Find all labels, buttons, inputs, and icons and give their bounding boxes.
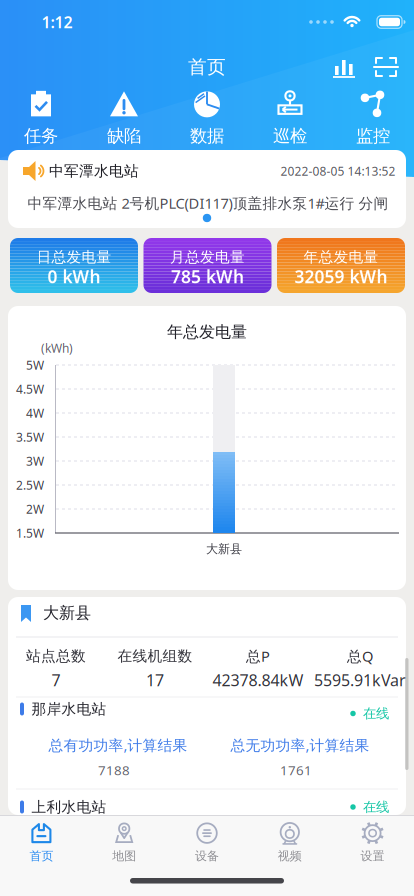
staticText: 在线 <box>363 799 389 815</box>
staticText: 32059 kWh <box>294 265 387 288</box>
staticText: 年总发电量 <box>303 248 378 266</box>
button[interactable]: 扫一扫 <box>373 54 399 80</box>
staticText: 3.5W <box>16 429 44 445</box>
staticText: 大新县 <box>206 542 242 556</box>
staticText: 月总发电量 <box>170 248 245 266</box>
staticText: 首页 <box>188 55 226 78</box>
staticText: 任务 <box>24 125 58 147</box>
staticText: 地图 <box>112 849 136 863</box>
staticText: 总P <box>246 646 270 666</box>
staticText: 2W <box>26 501 44 517</box>
staticText: 年总发电量 <box>167 322 247 342</box>
staticText: 1761 <box>280 761 312 779</box>
staticText: 在线机组数 <box>117 647 192 665</box>
staticText: 42378.84kW <box>212 669 303 691</box>
staticText: 1.5W <box>16 525 44 541</box>
button[interactable]: 那岸水电站 <box>8 696 406 722</box>
staticText: 中军潭水电站 <box>49 162 139 180</box>
staticText: 设备 <box>195 849 219 863</box>
staticText: 缺陷 <box>107 125 141 147</box>
button[interactable]: 巡检 <box>249 90 331 146</box>
staticText: 总Q <box>347 646 373 666</box>
button[interactable]: 设备 <box>166 818 248 866</box>
button[interactable]: 视频 <box>248 818 331 866</box>
staticText: 4W <box>26 405 44 421</box>
staticText: 3W <box>26 453 44 469</box>
staticText: 7188 <box>98 761 130 779</box>
staticText: 总有功功率,计算结果 <box>48 735 187 755</box>
staticText: 17 <box>146 669 164 691</box>
button[interactable]: 数据 <box>166 90 248 146</box>
staticText: 2.5W <box>16 477 44 493</box>
staticText: 785 kWh <box>171 265 244 288</box>
staticText: 7 <box>51 669 60 691</box>
button[interactable]: 年总发电量 <box>277 238 405 293</box>
button[interactable]: 监控 <box>332 90 414 146</box>
staticText: 0 kWh <box>47 265 100 288</box>
button[interactable]: 上利水电站 <box>8 794 406 820</box>
staticText: 1:12 <box>41 11 72 33</box>
staticText: 日总发电量 <box>36 248 111 266</box>
staticText: (kWh) <box>41 340 73 356</box>
staticText: 监控 <box>356 125 390 147</box>
button[interactable]: 首页 <box>0 818 83 866</box>
staticText: 那岸水电站 <box>31 700 106 718</box>
staticText: 大新县 <box>43 603 91 623</box>
button[interactable]: 缺陷 <box>83 90 165 146</box>
staticText: 总无功功率,计算结果 <box>230 735 369 755</box>
staticText: 在线 <box>363 705 389 722</box>
staticText: 上利水电站 <box>31 798 106 816</box>
button[interactable]: 月总发电量 <box>143 238 271 293</box>
staticText: 设置 <box>361 849 385 863</box>
staticText: 巡检 <box>273 125 307 147</box>
staticText: 2022-08-05 14:13:52 <box>280 163 395 179</box>
staticText: 视频 <box>278 849 302 863</box>
button[interactable]: 任务 <box>0 90 82 146</box>
button[interactable]: 中军潭水电站 <box>8 150 406 228</box>
staticText: 5595.91kVar <box>314 669 406 691</box>
button[interactable]: 设置 <box>331 818 414 866</box>
staticText: 中军潭水电站 2号机PLC(DI117)顶盖排水泵1#运行 分闸 <box>27 193 388 213</box>
button[interactable]: 地图 <box>83 818 166 866</box>
staticText: 5W <box>26 357 44 373</box>
staticText: 4.5W <box>16 381 44 397</box>
staticText: 首页 <box>29 849 53 863</box>
staticText: 数据 <box>190 125 224 147</box>
button[interactable]: 统计 <box>331 54 357 80</box>
button[interactable]: 日总发电量 <box>10 238 138 293</box>
staticText: 站点总数 <box>26 647 86 665</box>
